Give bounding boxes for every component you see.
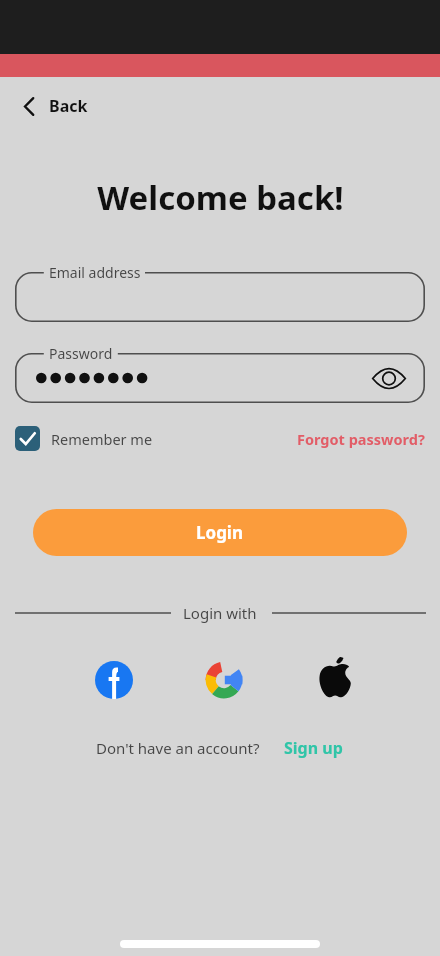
button[interactable]: Forgot password? [297, 425, 425, 453]
staticText: Welcome back! [97, 175, 344, 220]
button[interactable]: Sign up [282, 734, 345, 762]
staticText: Don't have an account? [96, 738, 260, 758]
button[interactable]: Show password [15, 353, 425, 403]
staticText: Login with [183, 603, 257, 623]
staticText: Login [196, 521, 244, 544]
button[interactable]: Login with Google [200, 656, 248, 704]
staticText: Back [49, 95, 88, 117]
button[interactable]: Login with Apple [310, 656, 358, 704]
staticText: Forgot password? [297, 429, 425, 449]
button[interactable]: Back [14, 90, 96, 122]
button[interactable]: Login [33, 509, 407, 556]
staticText: Remember me [51, 429, 153, 449]
staticText: Email address [49, 263, 141, 282]
button[interactable]: Show password [367, 356, 411, 400]
staticText: Sign up [284, 737, 343, 759]
button[interactable]: Remember me [15, 422, 153, 455]
button[interactable]: Login with Facebook [90, 656, 138, 704]
button[interactable] [15, 272, 425, 322]
staticText: Password [49, 344, 113, 363]
